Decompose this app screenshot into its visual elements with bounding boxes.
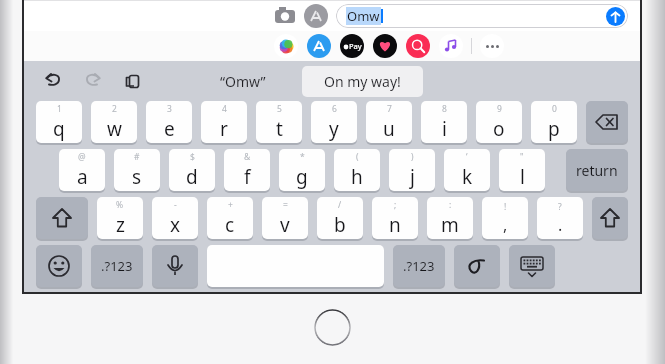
button[interactable]: App Store: [304, 4, 328, 28]
button[interactable]: 9: [476, 101, 522, 144]
button[interactable]: Dictate: [152, 245, 198, 288]
button[interactable]: 8: [421, 101, 467, 144]
staticText: (: [356, 151, 359, 163]
staticText: &: [244, 151, 251, 163]
staticText: .?123: [403, 257, 435, 275]
staticText: i: [442, 116, 447, 142]
button[interactable]: Digital Touch: [373, 34, 397, 58]
staticText: Pay: [349, 41, 362, 51]
button[interactable]: #: [114, 149, 160, 192]
staticText: c: [225, 212, 235, 238]
staticText: .: [558, 214, 563, 236]
button[interactable]: Shift: [36, 197, 88, 240]
button[interactable]: Images: [406, 34, 430, 58]
staticText: j: [410, 164, 415, 190]
button[interactable]: @: [59, 149, 105, 192]
staticText: ‘: [466, 151, 468, 163]
button[interactable]: More: [480, 34, 504, 58]
button[interactable]: Send: [606, 7, 625, 26]
button[interactable]: -: [152, 197, 198, 240]
staticText: ): [411, 151, 414, 163]
staticText: z: [116, 212, 125, 238]
staticText: “Omw”: [220, 72, 266, 91]
staticText: l: [520, 164, 525, 190]
button[interactable]: ?: [537, 197, 583, 240]
staticText: x: [170, 212, 181, 238]
staticText: v: [280, 212, 290, 238]
button[interactable]: On my way!: [302, 66, 423, 97]
staticText: u: [383, 116, 395, 142]
button[interactable]: Home: [314, 309, 351, 346]
button[interactable]: 0: [531, 101, 577, 144]
button[interactable]: Shift: [592, 197, 628, 240]
button[interactable]: Omw: [336, 4, 628, 28]
staticText: =: [283, 199, 288, 211]
staticText: o: [493, 116, 505, 142]
button[interactable]: 2: [91, 101, 137, 144]
staticText: .?123: [101, 257, 133, 275]
button[interactable]: Handwriting: [454, 245, 500, 288]
staticText: *: [300, 151, 305, 163]
staticText: d: [186, 164, 198, 190]
button[interactable]: Hide keyboard: [509, 245, 555, 288]
staticText: #: [134, 151, 140, 163]
staticText: a: [77, 164, 88, 190]
staticText: s: [132, 164, 142, 190]
button[interactable]: &: [224, 149, 270, 192]
button[interactable]: “Omw”: [206, 67, 280, 96]
button[interactable]: Redo: [78, 66, 108, 96]
button[interactable]: 7: [366, 101, 412, 144]
button[interactable]: .?123: [393, 245, 445, 288]
button[interactable]: Photos: [274, 34, 298, 58]
button[interactable]: return: [566, 149, 628, 192]
button[interactable]: /: [317, 197, 363, 240]
staticText: q: [53, 116, 65, 142]
button[interactable]: 4: [201, 101, 247, 144]
button[interactable]: Paste: [118, 66, 148, 96]
button[interactable]: *: [279, 149, 325, 192]
button[interactable]: !: [482, 197, 528, 240]
button[interactable]: =: [262, 197, 308, 240]
staticText: e: [164, 116, 175, 142]
button[interactable]: 6: [311, 101, 357, 144]
staticText: !: [504, 201, 507, 213]
staticText: b: [334, 212, 346, 238]
button[interactable]: .?123: [91, 245, 143, 288]
staticText: /: [338, 199, 342, 211]
button[interactable]: Camera: [272, 3, 298, 29]
button[interactable]: %: [97, 197, 143, 240]
button[interactable]: Backspace: [586, 101, 628, 144]
button[interactable]: ": [499, 149, 545, 192]
staticText: On my way!: [324, 72, 401, 91]
staticText: +: [228, 199, 233, 211]
button[interactable]: Space: [207, 245, 384, 288]
button[interactable]: ‘: [444, 149, 490, 192]
staticText: f: [244, 164, 251, 190]
button[interactable]: Music: [439, 34, 463, 58]
button[interactable]: :: [427, 197, 473, 240]
button[interactable]: ): [389, 149, 435, 192]
button[interactable]: Apple Pay: [340, 34, 364, 58]
staticText: 0: [552, 103, 557, 115]
button[interactable]: 3: [146, 101, 192, 144]
staticText: 1: [57, 103, 62, 115]
staticText: 8: [442, 103, 447, 115]
staticText: p: [548, 116, 560, 142]
button[interactable]: App Store: [307, 34, 331, 58]
button[interactable]: $: [169, 149, 215, 192]
staticText: ?: [558, 201, 562, 213]
button[interactable]: ;: [372, 197, 418, 240]
button[interactable]: +: [207, 197, 253, 240]
button[interactable]: 5: [256, 101, 302, 144]
staticText: h: [351, 164, 363, 190]
staticText: ,: [503, 214, 508, 236]
button[interactable]: Emoji: [36, 245, 82, 288]
button[interactable]: Undo: [38, 66, 68, 96]
button[interactable]: (: [334, 149, 380, 192]
staticText: 4: [222, 103, 227, 115]
staticText: ;: [394, 199, 397, 211]
staticText: %: [116, 199, 124, 211]
staticText: ": [520, 151, 524, 163]
button[interactable]: 1: [36, 101, 82, 144]
staticText: 7: [387, 103, 392, 115]
